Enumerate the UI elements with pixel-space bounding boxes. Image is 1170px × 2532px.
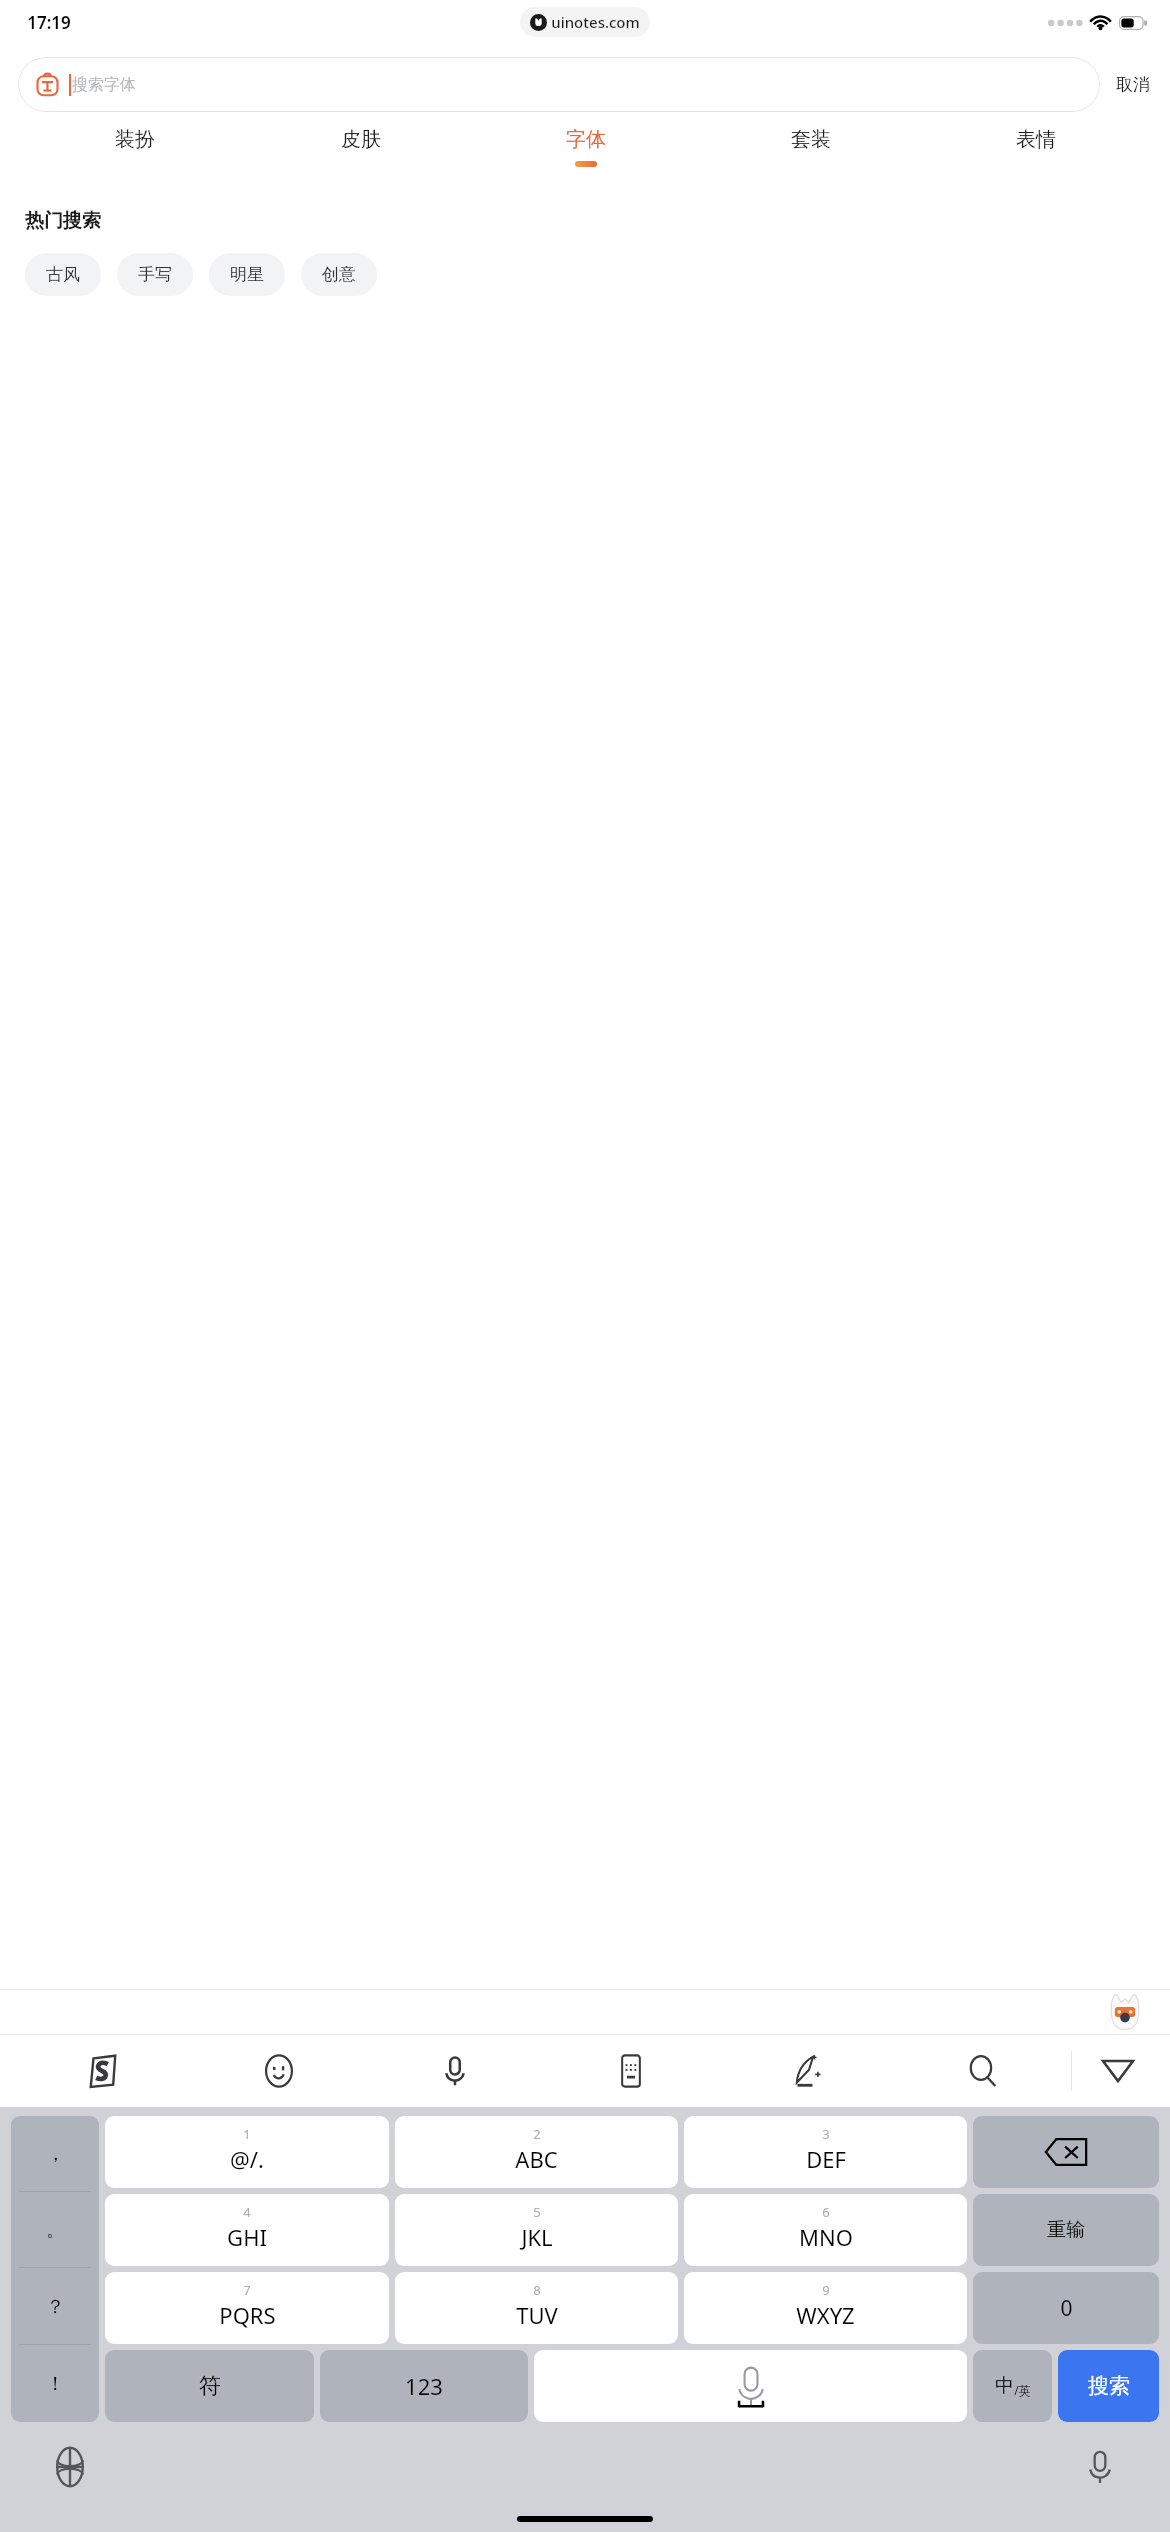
button[interactable]: 取消: [1100, 66, 1152, 103]
button[interactable]: 2: [395, 2116, 678, 2188]
button[interactable]: 8: [395, 2272, 678, 2344]
staticText: PQRS: [219, 2300, 276, 2330]
button[interactable]: 搜索字体: [18, 57, 1100, 112]
staticText: 手写: [138, 264, 172, 285]
button[interactable]: 重输: [973, 2194, 1159, 2266]
staticText: 0: [1060, 2294, 1073, 2323]
staticText: WXYZ: [796, 2300, 855, 2330]
staticText: 7: [243, 2281, 251, 2299]
button[interactable]: 4: [105, 2194, 389, 2266]
staticText: 重输: [1047, 2218, 1085, 2242]
staticText: 8: [533, 2281, 541, 2299]
button[interactable]: 明星: [209, 253, 285, 296]
staticText: GHI: [227, 2222, 267, 2252]
staticText: 取消: [1116, 74, 1150, 95]
button[interactable]: 字体: [473, 121, 698, 173]
staticText: ，: [46, 2142, 65, 2166]
button[interactable]: 1: [105, 2116, 389, 2188]
button[interactable]: 7: [105, 2272, 389, 2344]
button[interactable]: 皮肤: [248, 121, 473, 167]
button[interactable]: 123: [320, 2350, 528, 2422]
button[interactable]: 手写: [117, 253, 193, 296]
staticText: JKL: [521, 2222, 553, 2252]
button[interactable]: 键盘设置: [543, 2034, 719, 2107]
button[interactable]: 古风: [25, 253, 101, 296]
staticText: /英: [1014, 2382, 1031, 2398]
staticText: 创意: [322, 264, 356, 285]
button[interactable]: 手写输入: [719, 2034, 895, 2107]
button[interactable]: 搜狗输入法: [14, 2034, 191, 2107]
staticText: 3: [822, 2125, 830, 2143]
staticText: 套装: [791, 127, 831, 152]
button[interactable]: 装扮: [22, 121, 248, 167]
staticText: 表情: [1016, 127, 1056, 152]
staticText: 明星: [230, 264, 264, 285]
button[interactable]: 输入法助手: [1102, 1989, 1148, 2034]
button[interactable]: 表情: [191, 2034, 367, 2107]
staticText: uinotes.com: [551, 12, 640, 32]
staticText: 。: [46, 2218, 65, 2242]
staticText: 17:19: [27, 11, 71, 34]
button[interactable]: 语音输入: [1072, 2439, 1128, 2495]
staticText: 中: [995, 2374, 1014, 2398]
staticText: DEF: [806, 2144, 846, 2174]
button[interactable]: 收起键盘: [1072, 2034, 1164, 2107]
staticText: 1: [243, 2125, 251, 2143]
button[interactable]: 5: [395, 2194, 678, 2266]
button[interactable]: 表情: [923, 121, 1148, 167]
staticText: 123: [405, 2371, 443, 2401]
staticText: @/.: [230, 2144, 264, 2174]
staticText: ！: [46, 2372, 65, 2396]
button[interactable]: 搜索: [1058, 2350, 1159, 2422]
staticText: 字体: [566, 127, 606, 152]
button[interactable]: 中: [973, 2350, 1052, 2422]
staticText: 2: [533, 2125, 541, 2143]
staticText: 搜索字体: [72, 75, 136, 95]
button[interactable]: 9: [684, 2272, 967, 2344]
button[interactable]: 创意: [301, 253, 377, 296]
staticText: 6: [822, 2203, 830, 2221]
button[interactable]: 搜索: [895, 2034, 1071, 2107]
staticText: ？: [46, 2295, 65, 2319]
button[interactable]: 套装: [698, 121, 923, 167]
button[interactable]: 切换输入语言: [42, 2439, 98, 2495]
button[interactable]: 3: [684, 2116, 967, 2188]
staticText: 装扮: [115, 127, 155, 152]
staticText: ABC: [515, 2144, 558, 2174]
staticText: 搜索: [1088, 2373, 1130, 2399]
staticText: 符: [199, 2372, 221, 2400]
button[interactable]: 符: [105, 2350, 314, 2422]
staticText: 热门搜索: [25, 209, 101, 233]
staticText: 9: [822, 2281, 830, 2299]
staticText: 4: [243, 2203, 251, 2221]
button[interactable]: 删除: [973, 2116, 1159, 2188]
staticText: 古风: [46, 264, 80, 285]
button[interactable]: 6: [684, 2194, 967, 2266]
button[interactable]: 语音输入: [367, 2034, 543, 2107]
button[interactable]: ，: [11, 2116, 99, 2422]
staticText: TUV: [516, 2300, 558, 2330]
button[interactable]: 0: [973, 2272, 1159, 2344]
staticText: 5: [533, 2203, 541, 2221]
staticText: MNO: [799, 2222, 853, 2252]
staticText: 皮肤: [341, 127, 381, 152]
button[interactable]: 空格: [534, 2350, 967, 2422]
